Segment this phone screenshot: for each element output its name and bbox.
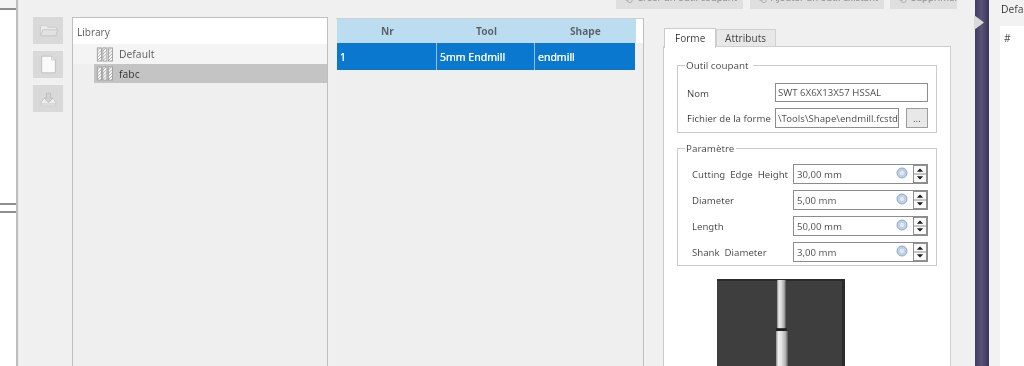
button[interactable]: 3,00 mm bbox=[793, 242, 928, 262]
staticText: Créer un outil coupant bbox=[637, 0, 738, 4]
staticText: Length bbox=[692, 220, 724, 233]
staticText: Defau bbox=[1001, 2, 1024, 16]
staticText: 30,00 mm bbox=[797, 168, 842, 181]
button[interactable]: Créer un outil coupant bbox=[616, 0, 743, 9]
staticText: Shape bbox=[570, 24, 601, 38]
staticText: Nr bbox=[381, 24, 394, 38]
staticText: \Tools\Shape\endmill.fcstd bbox=[778, 112, 899, 125]
button[interactable] bbox=[94, 64, 327, 83]
button[interactable]: Attributs bbox=[716, 29, 776, 47]
staticText: Nom bbox=[687, 87, 710, 100]
staticText: Supprimer bbox=[911, 0, 959, 4]
button[interactable]: 30,00 mm bbox=[793, 164, 928, 184]
button[interactable]: Supprimer bbox=[890, 0, 964, 9]
staticText: Paramètre bbox=[686, 142, 735, 155]
button[interactable]: Increment value bbox=[913, 165, 927, 183]
staticText: ... bbox=[913, 112, 921, 125]
button[interactable]: 50,00 mm bbox=[793, 216, 928, 236]
button[interactable]: Déplier le panneau bbox=[975, 0, 989, 366]
staticText: Fichier de la forme bbox=[687, 112, 771, 125]
staticText: fabc bbox=[119, 67, 140, 81]
button[interactable]: Parcourir bbox=[906, 108, 928, 128]
staticText: 1 bbox=[340, 50, 347, 64]
button[interactable]: Nouvelle bibliothèque bbox=[33, 51, 63, 78]
staticText: Attributs bbox=[725, 31, 767, 45]
staticText: Forme bbox=[675, 31, 706, 45]
button[interactable]: \Tools\Shape\endmill.fcstd bbox=[775, 108, 899, 128]
button[interactable]: SWT 6X6X13X57 HSSAL bbox=[775, 83, 928, 102]
staticText: Library bbox=[77, 25, 110, 39]
staticText: 50,00 mm bbox=[797, 220, 842, 233]
staticText: Diameter bbox=[692, 194, 735, 207]
button[interactable]: Tool bbox=[437, 19, 535, 43]
staticText: Shank Diameter bbox=[692, 246, 767, 259]
staticText: Cutting Edge Height bbox=[692, 168, 789, 181]
button[interactable] bbox=[337, 43, 635, 70]
button[interactable]: Increment value bbox=[913, 243, 927, 261]
button[interactable]: Ajouter un outil existant bbox=[750, 0, 884, 9]
button[interactable]: Increment value bbox=[913, 191, 927, 209]
staticText: SWT 6X6X13X57 HSSAL bbox=[778, 86, 882, 99]
button[interactable]: Nr bbox=[337, 19, 437, 43]
staticText: endmill bbox=[538, 50, 575, 64]
staticText: # bbox=[1004, 31, 1011, 45]
button[interactable]: Ouvrir la bibliothèque bbox=[33, 17, 63, 44]
staticText: Tool bbox=[476, 24, 497, 38]
staticText: 5mm Endmill bbox=[440, 50, 506, 64]
staticText: Default bbox=[119, 47, 155, 61]
button[interactable]: Forme bbox=[664, 28, 716, 48]
staticText: 3,00 mm bbox=[797, 246, 837, 259]
button[interactable] bbox=[73, 44, 327, 64]
button[interactable]: 5,00 mm bbox=[793, 190, 928, 210]
staticText: Ajouter un outil existant bbox=[771, 0, 879, 4]
button[interactable]: Shape bbox=[535, 19, 636, 43]
staticText: Outil coupant bbox=[686, 59, 749, 72]
button[interactable]: Enregistrer bbox=[33, 85, 63, 112]
button[interactable]: Increment value bbox=[913, 217, 927, 235]
staticText: 5,00 mm bbox=[797, 194, 837, 207]
